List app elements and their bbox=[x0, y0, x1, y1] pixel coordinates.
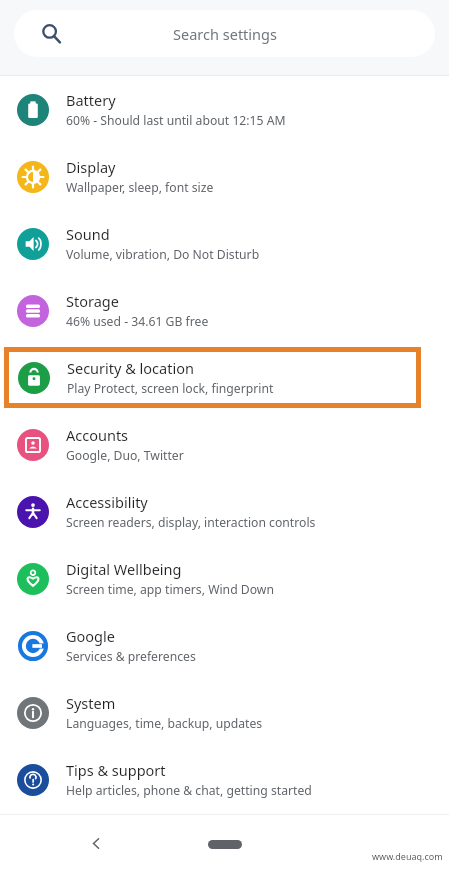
staticText: Google, Duo, Twitter bbox=[66, 447, 184, 464]
staticText: Battery bbox=[66, 90, 116, 110]
staticText: Help articles, phone & chat, getting sta… bbox=[66, 782, 312, 799]
staticText: Security & location bbox=[67, 358, 194, 378]
staticText: Languages, time, backup, updates bbox=[66, 715, 263, 732]
button[interactable]: Storage bbox=[0, 277, 449, 344]
staticText: Play Protect, screen lock, fingerprint bbox=[67, 380, 274, 397]
button[interactable]: Security & location bbox=[9, 352, 416, 403]
button[interactable]: Display bbox=[0, 143, 449, 210]
staticText: Digital Wellbeing bbox=[66, 559, 182, 579]
staticText: Screen readers, display, interaction con… bbox=[66, 514, 316, 531]
button[interactable]: System bbox=[0, 679, 449, 746]
staticText: Storage bbox=[66, 291, 119, 311]
button[interactable]: Battery bbox=[0, 76, 449, 143]
button[interactable]: Google bbox=[0, 612, 449, 679]
button[interactable]: Back bbox=[68, 815, 124, 872]
staticText: Volume, vibration, Do Not Disturb bbox=[66, 246, 260, 263]
staticText: Services & preferences bbox=[66, 648, 196, 665]
button[interactable]: Digital Wellbeing bbox=[0, 545, 449, 612]
staticText: Screen time, app timers, Wind Down bbox=[66, 581, 274, 598]
staticText: 46% used - 34.61 GB free bbox=[66, 313, 209, 330]
button[interactable]: Accessibility bbox=[0, 478, 449, 545]
staticText: Sound bbox=[66, 224, 110, 244]
staticText: Accessibility bbox=[66, 492, 148, 512]
staticText: www.deuaq.com bbox=[372, 850, 443, 862]
button[interactable]: Sound bbox=[0, 210, 449, 277]
staticText: Accounts bbox=[66, 425, 129, 445]
button[interactable]: Accounts bbox=[0, 411, 449, 478]
button[interactable]: Search settings bbox=[14, 10, 435, 57]
staticText: Tips & support bbox=[66, 760, 166, 780]
staticText: Google bbox=[66, 626, 115, 646]
staticText: System bbox=[66, 693, 116, 713]
staticText: Wallpaper, sleep, font size bbox=[66, 179, 214, 196]
staticText: 60% - Should last until about 12:15 AM bbox=[66, 112, 286, 129]
button[interactable]: Home bbox=[193, 830, 257, 858]
staticText: Display bbox=[66, 157, 116, 177]
staticText: Search settings bbox=[173, 24, 277, 44]
button[interactable]: Tips & support bbox=[0, 746, 449, 813]
